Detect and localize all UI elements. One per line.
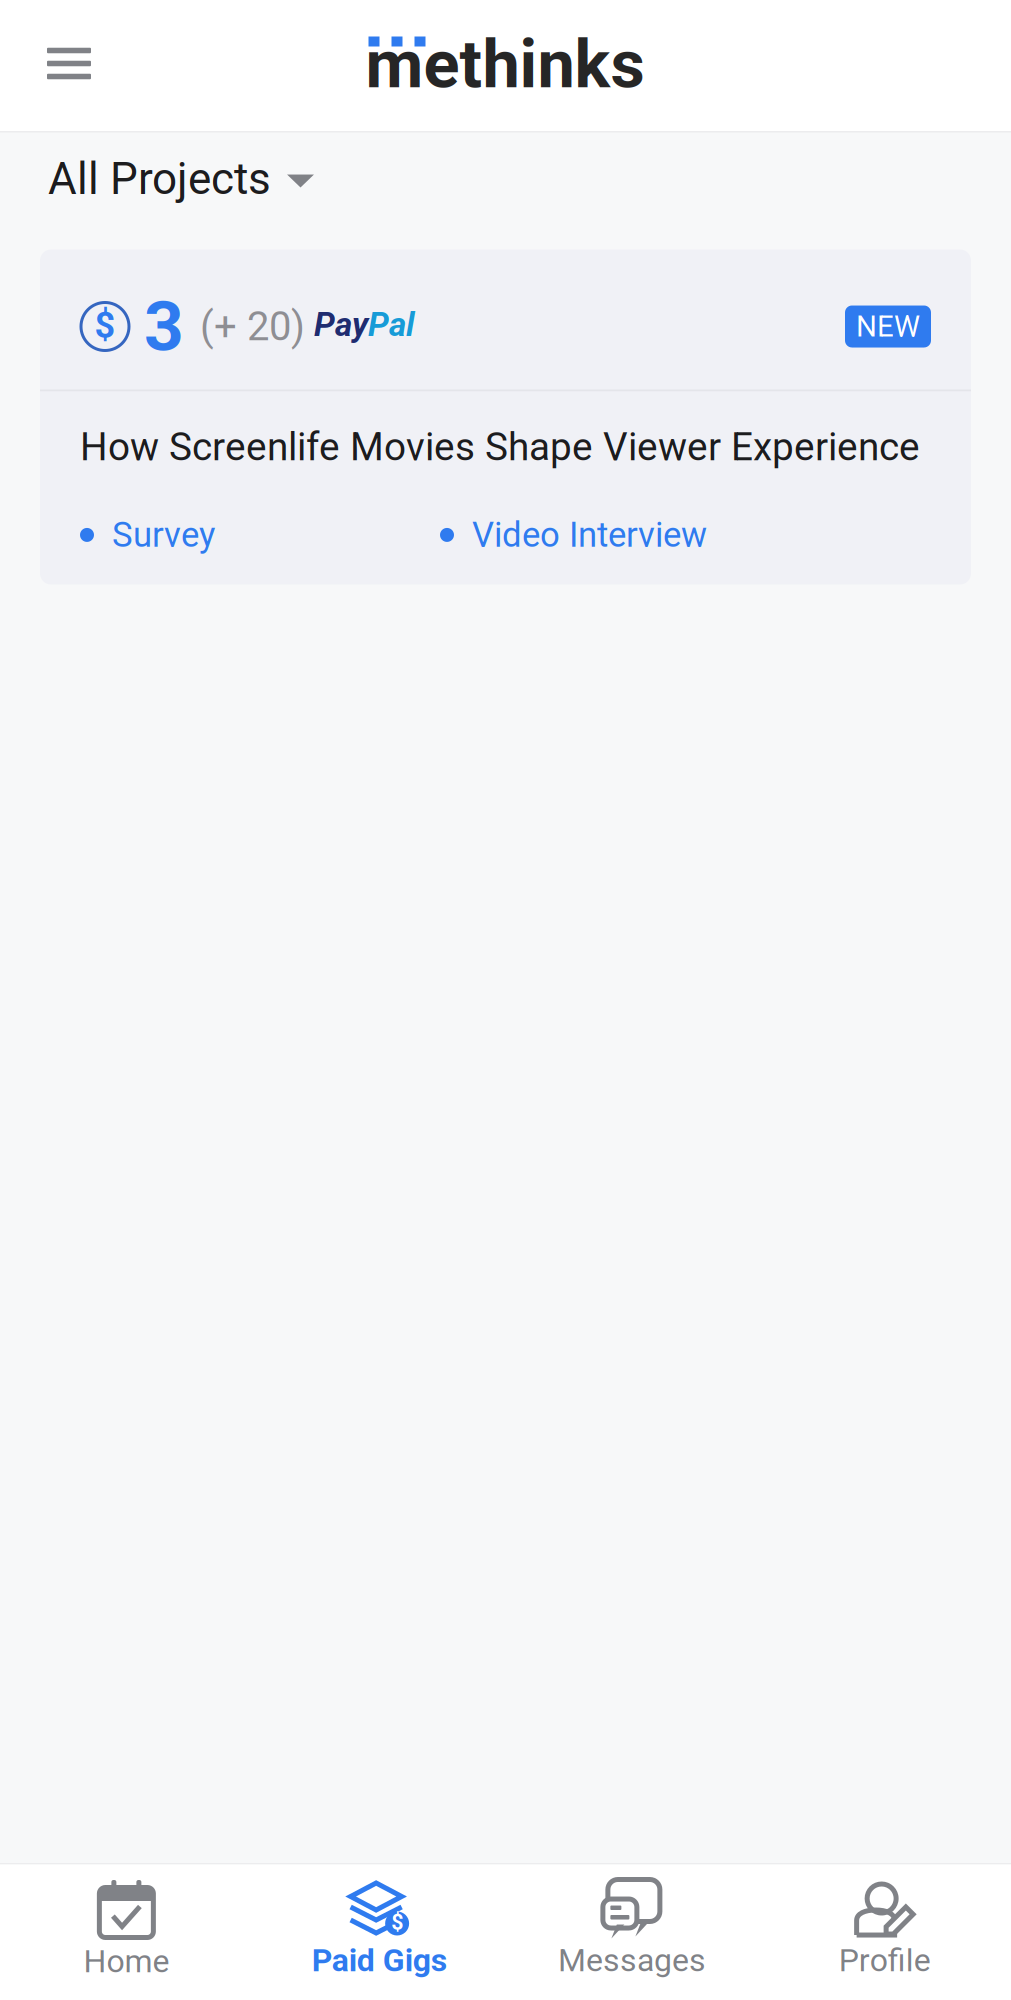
staticText: $ <box>94 304 115 347</box>
staticText: 3 <box>144 286 184 367</box>
staticText: Pal <box>368 305 415 344</box>
staticText: How Screenlife Movies Shape Viewer Exper… <box>80 424 920 470</box>
staticText: NEW <box>856 309 920 344</box>
staticText: Paid Gigs <box>312 1941 447 1979</box>
staticText: Messages <box>558 1941 706 1979</box>
button[interactable]: All Projects <box>0 139 344 243</box>
staticText: Survey <box>112 515 215 555</box>
button[interactable]: Menu <box>0 0 138 131</box>
button[interactable]: $ <box>253 1865 506 1999</box>
staticText: methinks <box>365 25 644 104</box>
staticText: Pay <box>314 305 368 344</box>
staticText: (+ 20) <box>200 303 305 350</box>
staticText: Home <box>83 1942 169 1980</box>
staticText: Video Interview <box>472 515 707 555</box>
staticText: $ <box>391 1910 403 1935</box>
button[interactable]: Messages <box>505 1865 758 1999</box>
button[interactable]: NEW <box>845 305 931 347</box>
staticText: All Projects <box>48 153 271 205</box>
staticText: Profile <box>839 1941 931 1979</box>
button[interactable]: Profile <box>758 1865 1011 1999</box>
button[interactable]: Home <box>0 1864 253 2000</box>
